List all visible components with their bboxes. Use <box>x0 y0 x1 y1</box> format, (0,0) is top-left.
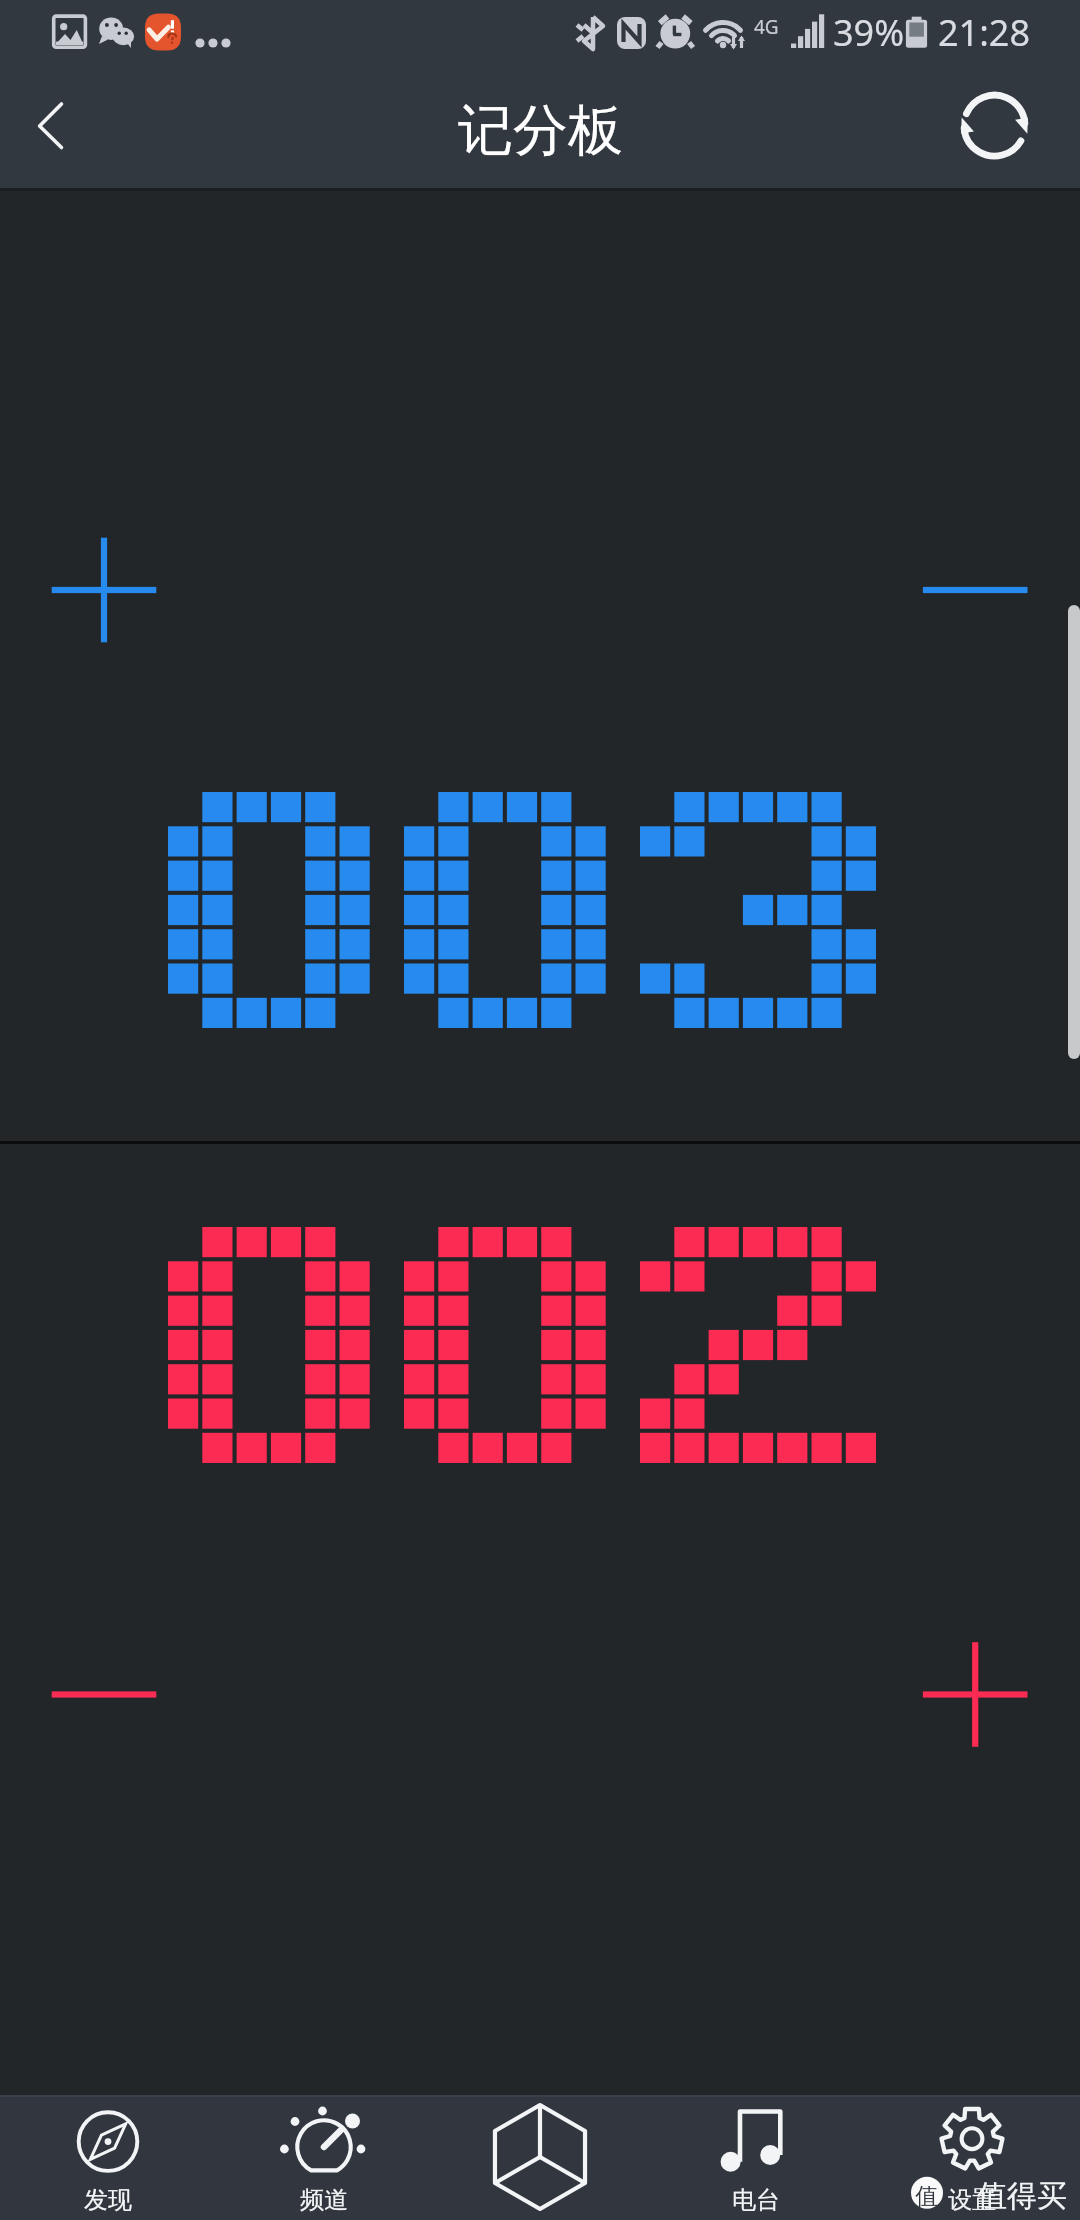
button[interactable]: 电台 <box>648 2095 864 2220</box>
staticText: 值得买 <box>977 2177 1067 2215</box>
button[interactable]: Blue team score 003 <box>0 188 1080 1141</box>
button[interactable]: 频道 <box>216 2095 432 2220</box>
staticText: 电台 <box>732 2185 780 2215</box>
button[interactable]: Back <box>0 75 110 188</box>
button[interactable]: Decrease blue score <box>903 518 1047 662</box>
staticText: 39% <box>833 8 905 57</box>
staticText: 频道 <box>300 2185 348 2215</box>
button[interactable]: Decrease red score <box>32 1622 176 1766</box>
button[interactable]: 发现 <box>0 2095 216 2220</box>
button[interactable]: Refresh <box>960 75 1080 188</box>
staticText: 记分板 <box>458 96 623 165</box>
button[interactable]: Increase red score <box>903 1622 1047 1766</box>
button[interactable]: 设置 <box>864 2095 1080 2220</box>
staticText: 值 <box>915 2182 938 2211</box>
button[interactable]: Cube <box>432 2095 648 2220</box>
staticText: 发现 <box>84 2185 132 2215</box>
staticText: 设置 <box>948 2185 996 2215</box>
button[interactable]: Red team score 002 <box>0 1144 1080 2095</box>
staticText: 4G <box>754 14 779 40</box>
staticText: 21:28 <box>938 8 1031 57</box>
button[interactable]: Increase blue score <box>32 518 176 662</box>
